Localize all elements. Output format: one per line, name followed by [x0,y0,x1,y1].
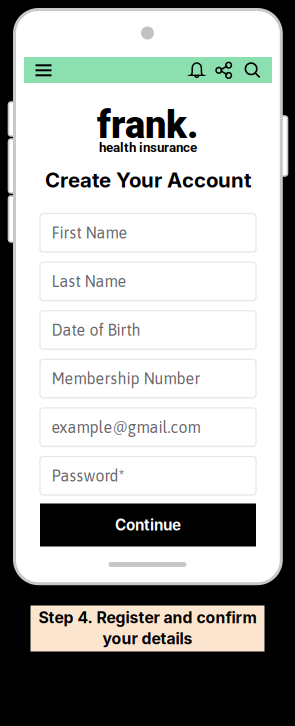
staticText: First Name [51,224,127,242]
staticText: your details [102,629,192,648]
staticText: Create Your Account [45,168,251,192]
staticText: example@gmail.com [51,418,200,436]
staticText: Last Name [51,272,126,290]
button[interactable]: Password* [40,456,256,495]
staticText: Membership Number [51,369,200,388]
staticText: health insurance [99,140,197,155]
staticText: Step 4. Register and confirm [38,608,256,627]
staticText: Password* [51,467,124,485]
button[interactable]: example@gmail.com [40,408,256,446]
button[interactable]: Last Name [40,262,256,301]
button[interactable]: Search [240,57,266,83]
staticText: Continue [115,516,181,534]
button[interactable]: Share [211,57,237,83]
button[interactable]: Membership Number [40,359,256,398]
button[interactable]: Continue [40,503,256,546]
button[interactable]: Date of Birth [40,311,256,349]
staticText: frank. [97,103,199,147]
button[interactable]: Menu [29,57,57,83]
staticText: Date of Birth [51,321,140,339]
button[interactable]: Notifications [184,57,209,83]
button[interactable]: First Name [40,213,256,252]
